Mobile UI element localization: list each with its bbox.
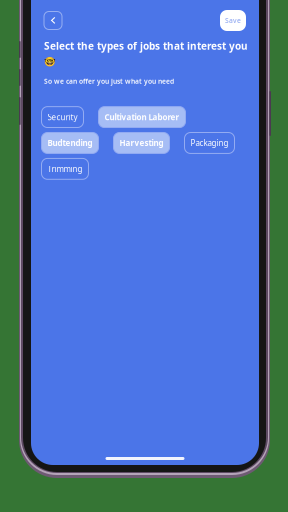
staticText: Budtending <box>47 137 92 148</box>
staticText: Harvesting <box>119 137 163 148</box>
button[interactable]: Budtending <box>41 132 98 153</box>
button[interactable]: Security <box>41 107 83 127</box>
staticText: Cultivation Laborer <box>104 112 179 122</box>
staticText: Security <box>47 112 77 122</box>
staticText: Packaging <box>190 137 228 148</box>
button[interactable]: Trimming <box>41 158 88 179</box>
staticText: 🤓 <box>44 57 56 67</box>
button[interactable]: Packaging <box>184 132 234 153</box>
button[interactable]: Harvesting <box>113 132 169 153</box>
button[interactable]: Back <box>44 11 62 29</box>
staticText: Select the types of jobs that interest y… <box>44 39 248 53</box>
staticText: So we can offer you just what you need <box>44 77 174 86</box>
staticText: Save <box>225 16 241 25</box>
button[interactable]: Save <box>220 10 246 31</box>
button[interactable]: Cultivation Laborer <box>98 107 185 127</box>
staticText: Trimming <box>47 163 82 174</box>
